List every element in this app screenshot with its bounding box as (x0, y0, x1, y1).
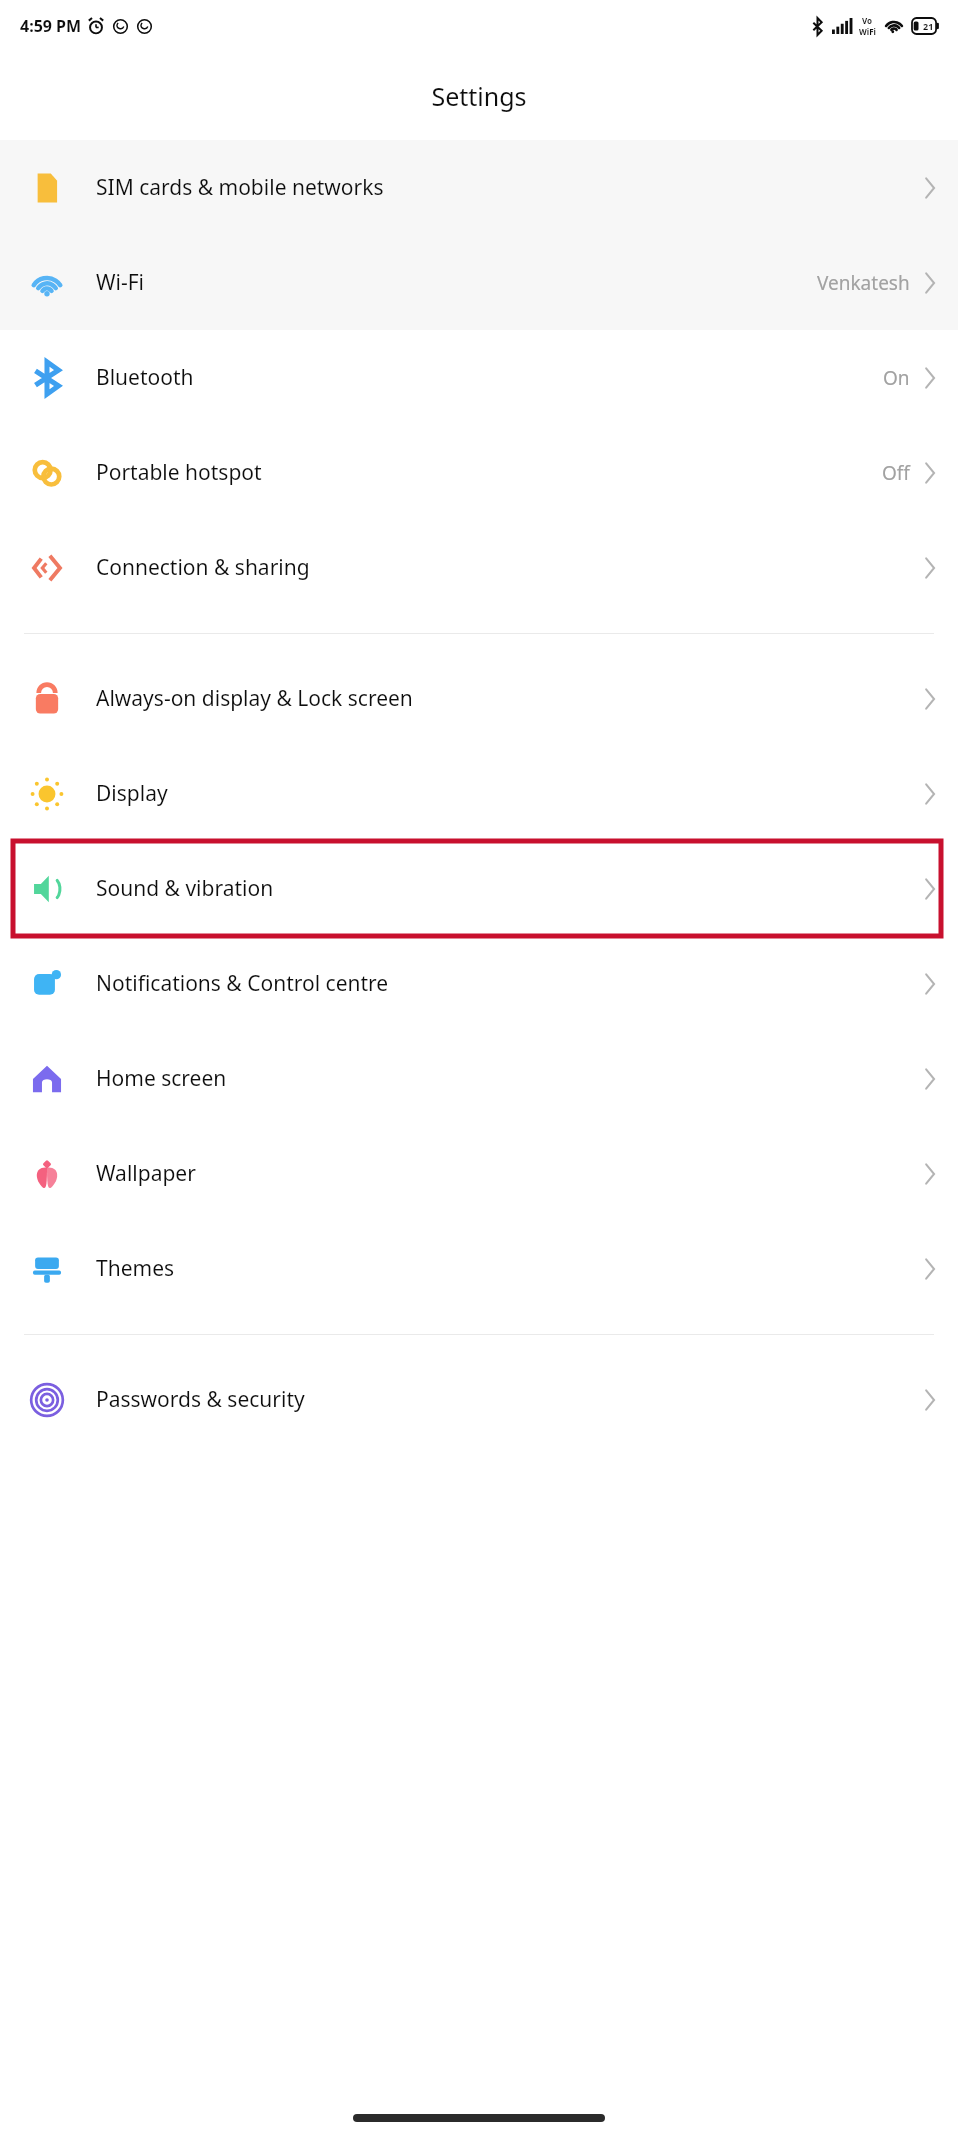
staticText: Vo (862, 15, 873, 26)
button[interactable]: Passwords & security (0, 1352, 958, 1447)
button[interactable]: Notifications & Control centre (0, 936, 958, 1031)
staticText: Notifications & Control centre (96, 969, 924, 998)
staticText: 21 (923, 20, 934, 32)
staticText: 4:59 PM (20, 15, 82, 37)
staticText: Connection & sharing (96, 553, 924, 582)
button[interactable]: Home screen (0, 1031, 958, 1126)
staticText: Wi-Fi (96, 268, 817, 297)
button[interactable]: Themes (0, 1221, 958, 1316)
staticText: Display (96, 779, 924, 808)
staticText: Always-on display & Lock screen (96, 684, 924, 713)
staticText: Home screen (96, 1064, 924, 1093)
staticText: SIM cards & mobile networks (96, 173, 924, 202)
button[interactable]: Portable hotspot (0, 425, 958, 520)
button[interactable]: SIM cards & mobile networks (0, 140, 958, 235)
staticText: Portable hotspot (96, 458, 882, 487)
button[interactable]: Sound & vibration (0, 841, 958, 936)
staticText: Sound & vibration (96, 874, 924, 903)
button[interactable]: Connection & sharing (0, 520, 958, 615)
staticText: WiFi (859, 26, 876, 37)
button[interactable]: Wallpaper (0, 1126, 958, 1221)
staticText: On (883, 365, 910, 391)
staticText: Venkatesh (817, 270, 910, 296)
button[interactable]: Bluetooth (0, 330, 958, 425)
staticText: Themes (96, 1254, 924, 1283)
staticText: Passwords & security (96, 1385, 924, 1414)
staticText: Settings (431, 79, 527, 113)
staticText: Wallpaper (96, 1159, 924, 1188)
button[interactable]: Display (0, 746, 958, 841)
staticText: Off (882, 460, 910, 486)
button[interactable]: Wi-Fi (0, 235, 958, 330)
staticText: Bluetooth (96, 363, 883, 392)
button[interactable]: Always-on display & Lock screen (0, 651, 958, 746)
